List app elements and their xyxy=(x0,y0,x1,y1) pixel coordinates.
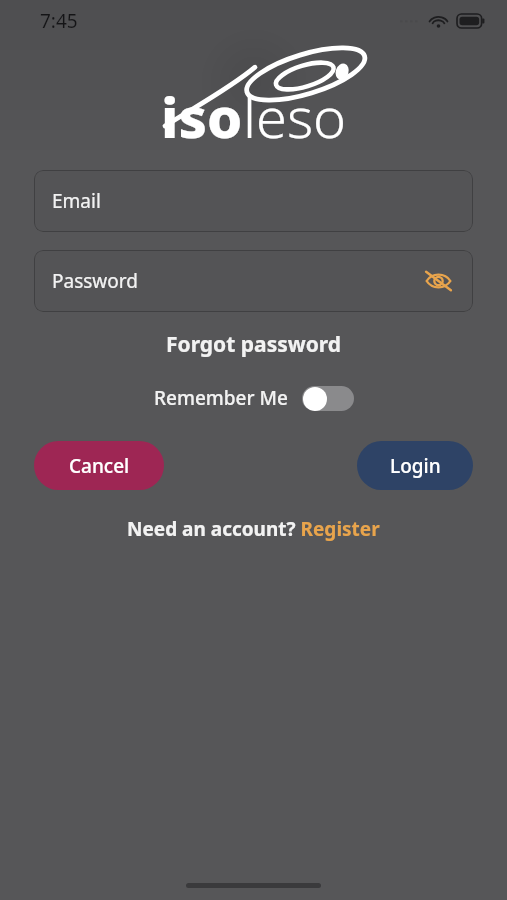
staticText: Password xyxy=(52,268,138,294)
staticText: Login xyxy=(390,453,441,479)
button[interactable]: Cancel xyxy=(34,441,164,490)
staticText: Email xyxy=(52,188,101,214)
button[interactable]: Need an account? Register xyxy=(119,512,388,546)
button[interactable]: Show password xyxy=(421,264,455,298)
button[interactable]: Remember Me xyxy=(148,381,360,415)
staticText: Need an account? Register xyxy=(127,516,380,542)
staticText: Forgot password xyxy=(166,330,342,359)
button[interactable]: Email xyxy=(34,170,473,232)
staticText: 7:45 xyxy=(40,8,78,34)
staticText: Remember Me xyxy=(154,385,288,411)
button[interactable]: Password xyxy=(34,250,473,312)
staticText: Cancel xyxy=(69,453,130,479)
staticText: iso xyxy=(161,78,243,154)
button[interactable]: Forgot password xyxy=(156,326,352,363)
button[interactable]: Login xyxy=(357,441,473,490)
staticText: leso xyxy=(243,78,347,154)
